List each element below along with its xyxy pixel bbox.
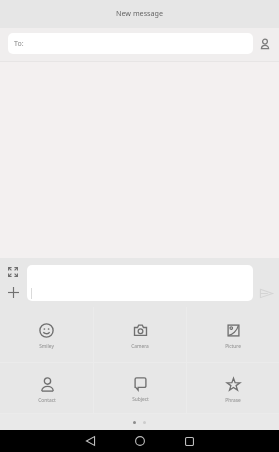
button[interactable]: Expand bbox=[5, 264, 21, 280]
button[interactable]: Send bbox=[255, 284, 278, 303]
staticText: To: bbox=[14, 39, 24, 49]
button[interactable]: Back bbox=[79, 430, 101, 452]
button[interactable]: Add attachment bbox=[5, 284, 21, 300]
staticText: Camera bbox=[131, 343, 149, 350]
button[interactable]: Add contact bbox=[256, 35, 273, 52]
button[interactable]: Smiley bbox=[0, 307, 93, 362]
button[interactable]: Recent apps bbox=[178, 430, 200, 452]
button[interactable]: Picture bbox=[187, 307, 279, 362]
staticText: Subject bbox=[132, 396, 149, 403]
button[interactable]: Camera bbox=[94, 307, 186, 362]
staticText: Smiley bbox=[39, 343, 54, 350]
button[interactable]: Contact bbox=[0, 363, 93, 413]
staticText: New message bbox=[116, 8, 164, 18]
staticText: Contact bbox=[38, 397, 56, 404]
button[interactable]: Phrase bbox=[187, 363, 279, 413]
button[interactable]: Subject bbox=[94, 363, 186, 413]
staticText: Phrase bbox=[225, 397, 241, 404]
button[interactable]: Home bbox=[129, 430, 151, 452]
button[interactable]: To: bbox=[8, 33, 253, 54]
staticText: Picture bbox=[225, 343, 241, 350]
